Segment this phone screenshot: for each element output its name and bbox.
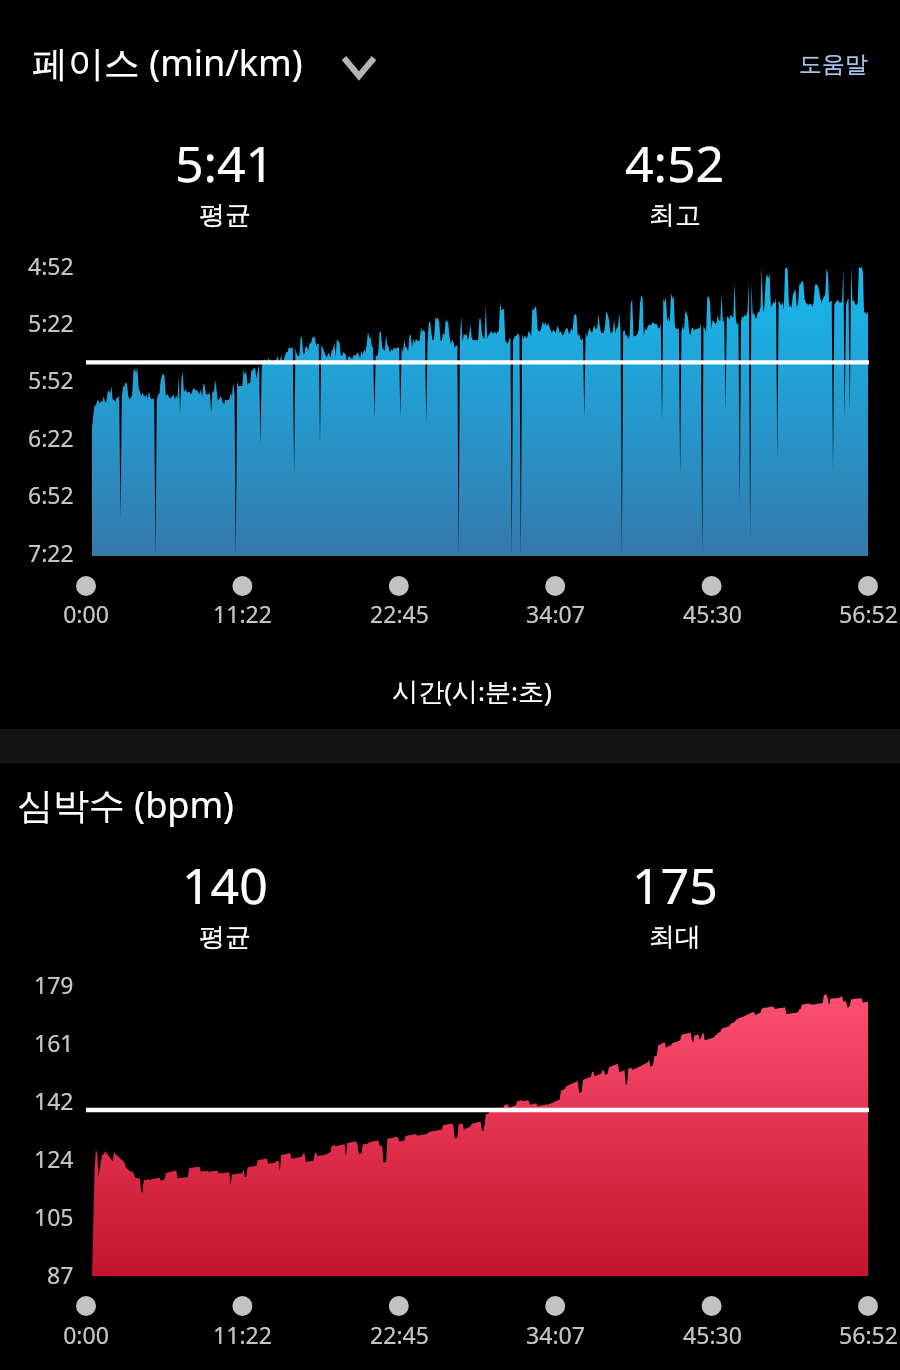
staticText: 4:52 [625, 129, 725, 197]
button[interactable]: 도움말 [799, 50, 868, 79]
staticText: 5:22 [28, 307, 74, 338]
staticText: 11:22 [213, 1319, 272, 1350]
staticText: 161 [34, 1027, 74, 1058]
staticText: 최대 [649, 921, 701, 954]
staticText: 56:52 [839, 598, 898, 629]
staticText: 87 [47, 1259, 74, 1290]
staticText: 5:41 [175, 129, 275, 197]
button[interactable]: 4:52 [625, 129, 725, 232]
staticText: 105 [34, 1201, 74, 1232]
staticText: 140 [182, 851, 268, 919]
staticText: 평균 [199, 921, 251, 954]
staticText: 심박수 (bpm) [17, 780, 234, 829]
staticText: 시간(시:분:초) [392, 673, 552, 709]
button[interactable]: 페이스 (min/km), 측정 항목 변경 [32, 34, 377, 90]
staticText: 175 [632, 851, 718, 919]
staticText: 7:22 [28, 537, 74, 568]
staticText: 45:30 [683, 598, 742, 629]
staticText: 최고 [649, 199, 701, 232]
staticText: 56:52 [839, 1319, 898, 1350]
button[interactable]: 5:41 [175, 129, 275, 232]
staticText: 6:52 [28, 479, 74, 510]
staticText: 45:30 [683, 1319, 742, 1350]
staticText: 페이스 (min/km) [32, 38, 303, 87]
staticText: 도움말 [799, 50, 868, 79]
staticText: 6:22 [28, 422, 74, 453]
staticText: 5:52 [28, 364, 74, 395]
staticText: 34:07 [526, 1319, 585, 1350]
staticText: 0:00 [63, 1319, 109, 1350]
staticText: 124 [34, 1143, 74, 1174]
staticText: 11:22 [213, 598, 272, 629]
button[interactable]: 175 [632, 851, 718, 954]
staticText: 0:00 [63, 598, 109, 629]
staticText: 22:45 [370, 1319, 429, 1350]
staticText: 평균 [199, 199, 251, 232]
staticText: 22:45 [370, 598, 429, 629]
staticText: 4:52 [28, 250, 74, 281]
button[interactable]: 140 [182, 851, 268, 954]
staticText: 179 [34, 969, 74, 1000]
button[interactable]: 심박수 (bpm) [17, 780, 234, 829]
staticText: 142 [34, 1085, 74, 1116]
staticText: 34:07 [526, 598, 585, 629]
